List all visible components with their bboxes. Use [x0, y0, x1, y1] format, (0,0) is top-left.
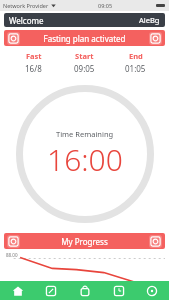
- staticText: 09:05: [98, 2, 113, 9]
- staticText: Network Provider: [3, 2, 49, 9]
- staticText: Time Remaining: [56, 129, 114, 139]
- staticText: 01:05: [125, 63, 146, 74]
- staticText: 88.00: [6, 252, 18, 258]
- button[interactable]: Fasting plan activated left action: [7, 32, 20, 45]
- staticText: Fasting plan activated: [20, 33, 149, 44]
- staticText: Welcome: [9, 15, 44, 26]
- staticText: AleBg: [139, 15, 160, 25]
- staticText: 16/8: [25, 63, 42, 74]
- button[interactable]: My Progress right action: [149, 235, 162, 248]
- button[interactable]: My Progress left action: [4, 233, 165, 249]
- button[interactable]: Settings: [135, 281, 168, 300]
- button[interactable]: Journal: [34, 281, 67, 300]
- staticText: Fast: [26, 51, 42, 61]
- staticText: Start: [75, 51, 94, 61]
- staticText: 09:05: [74, 63, 95, 74]
- staticText: End: [129, 51, 143, 61]
- button[interactable]: Plan: [68, 281, 101, 300]
- staticText: 16:00: [47, 139, 123, 180]
- button[interactable]: Home: [1, 281, 34, 300]
- button[interactable]: Fasting plan activated left action: [4, 30, 165, 46]
- button[interactable]: Fasting plan activated right action: [149, 32, 162, 45]
- staticText: My Progress: [20, 236, 149, 247]
- button[interactable]: Timer: [102, 281, 135, 300]
- button[interactable]: My Progress left action: [7, 235, 20, 248]
- button[interactable]: Welcome: [4, 13, 165, 27]
